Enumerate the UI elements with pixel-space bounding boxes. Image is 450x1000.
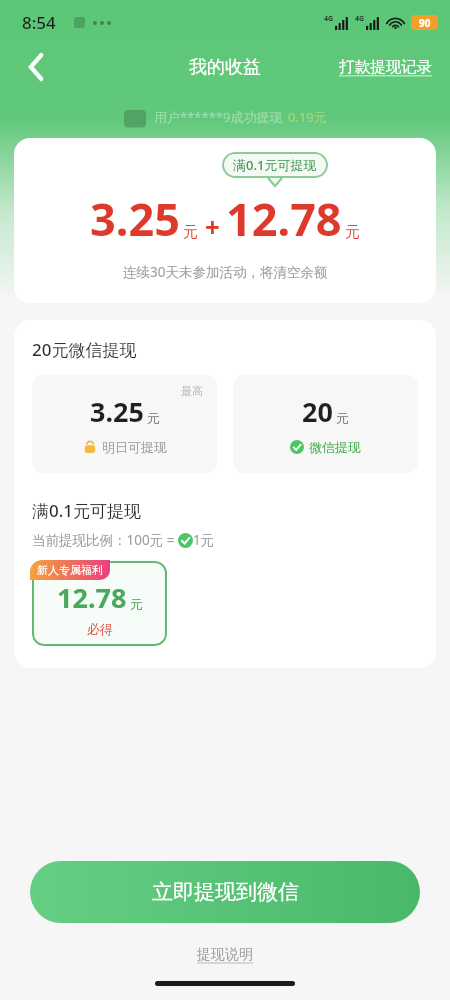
staticText: 20 xyxy=(302,393,333,430)
button[interactable]: 最高 xyxy=(32,375,217,473)
button[interactable]: 12.78 xyxy=(32,561,167,646)
staticText: 我的收益 xyxy=(189,56,261,79)
staticText: 立即提现到微信 xyxy=(152,879,299,905)
staticText: 微信提现 xyxy=(309,439,361,455)
staticText: 提现说明 xyxy=(197,946,253,964)
staticText: 12.78 xyxy=(226,188,342,249)
staticText: 最高 xyxy=(181,384,203,398)
staticText: 元 xyxy=(183,223,198,242)
button[interactable]: 打款提现记录 xyxy=(335,51,436,83)
staticText: 3.25 xyxy=(90,393,144,430)
staticText: 当前提现比例：100元 = xyxy=(32,531,178,549)
staticText: 元 xyxy=(336,410,349,426)
staticText: 必得 xyxy=(87,621,113,637)
staticText: 元 xyxy=(130,596,143,612)
staticText: 连续30天未参加活动，将清空余额 xyxy=(123,263,328,281)
button[interactable]: 20 xyxy=(233,375,418,473)
staticText: 4G xyxy=(355,14,365,24)
staticText: 3.25 xyxy=(90,188,180,249)
staticText: 12.78 xyxy=(57,579,127,616)
staticText: 90 xyxy=(419,16,431,30)
staticText: 0.19元 xyxy=(288,108,327,126)
staticText: 元 xyxy=(147,410,160,426)
staticText: 满0.1元可提现 xyxy=(32,499,142,522)
staticText: 打款提现记录 xyxy=(339,57,432,77)
staticText: 用户******9成功提现 xyxy=(154,108,283,126)
staticText: 1元 xyxy=(193,531,215,549)
button[interactable]: Back xyxy=(16,47,56,87)
button[interactable]: 提现说明 xyxy=(191,943,259,967)
staticText: 满0.1元可提现 xyxy=(233,156,317,174)
staticText: + xyxy=(205,209,220,244)
staticText: 明日可提现 xyxy=(102,439,167,455)
staticText: 8:54 xyxy=(22,11,56,34)
staticText: 4G xyxy=(324,14,334,24)
staticText: 元 xyxy=(345,223,360,242)
staticText: 新人专属福利 xyxy=(37,563,103,577)
staticText: 20元微信提现 xyxy=(32,338,137,361)
button[interactable]: 立即提现到微信 xyxy=(30,861,420,923)
